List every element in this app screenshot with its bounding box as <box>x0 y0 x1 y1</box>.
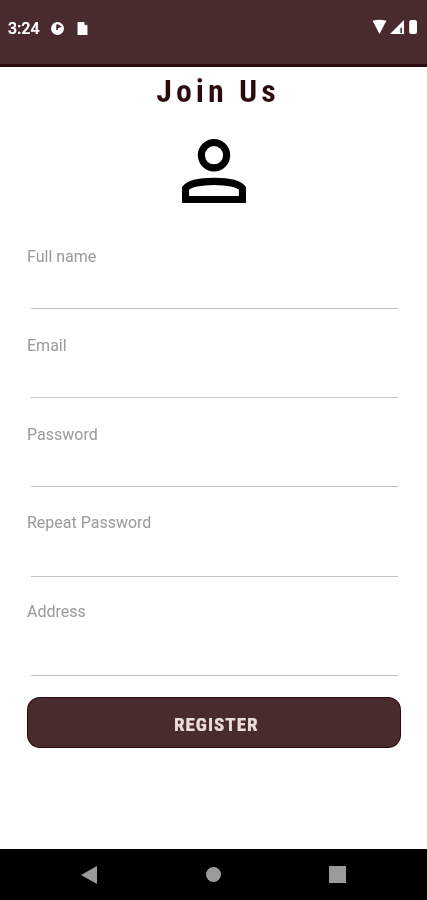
staticText: Password <box>27 425 98 444</box>
staticText: REGISTER <box>174 713 259 735</box>
button[interactable]: Full name <box>27 247 402 303</box>
staticText: 3:24 <box>8 19 40 38</box>
button[interactable]: Recent apps <box>310 849 364 900</box>
button[interactable]: Password <box>27 425 402 481</box>
button[interactable]: REGISTER <box>28 698 400 747</box>
staticText: Repeat Password <box>27 513 152 532</box>
staticText: Address <box>27 602 86 621</box>
button[interactable]: Repeat Password <box>27 513 402 569</box>
staticText: Email <box>27 336 67 355</box>
staticText: Full name <box>27 247 97 266</box>
staticText: Join Us <box>156 72 280 110</box>
button[interactable]: Address <box>27 602 402 658</box>
button[interactable]: Email <box>27 336 402 392</box>
button[interactable]: Home <box>186 849 240 900</box>
button[interactable]: Back <box>62 849 116 900</box>
